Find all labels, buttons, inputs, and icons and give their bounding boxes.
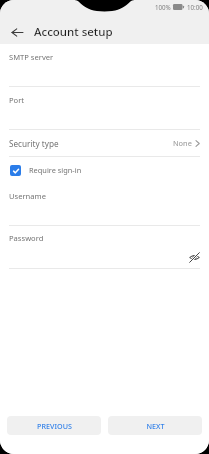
staticText: NEXT bbox=[146, 421, 165, 431]
button[interactable]: SMTP server bbox=[0, 44, 209, 86]
button[interactable]: Username bbox=[0, 183, 209, 225]
staticText: None bbox=[173, 138, 192, 148]
staticText: SMTP server bbox=[9, 52, 54, 62]
staticText: Account setup bbox=[34, 24, 113, 40]
staticText: Password bbox=[9, 233, 44, 243]
staticText: Security type bbox=[9, 138, 59, 149]
button[interactable]: Security type bbox=[0, 130, 209, 156]
button[interactable]: Require sign-in bbox=[0, 157, 209, 183]
button[interactable]: Back bbox=[6, 21, 28, 43]
staticText: 100% bbox=[155, 3, 171, 11]
staticText: Port bbox=[9, 95, 25, 105]
button[interactable]: NEXT bbox=[108, 416, 202, 435]
button[interactable]: Port bbox=[0, 87, 209, 129]
staticText: Username bbox=[9, 191, 46, 201]
button[interactable]: Show password bbox=[186, 249, 202, 265]
staticText: Require sign-in bbox=[29, 165, 82, 175]
staticText: PREVIOUS bbox=[37, 421, 72, 431]
staticText: 10:00 bbox=[187, 3, 203, 11]
button[interactable]: PREVIOUS bbox=[7, 416, 101, 435]
